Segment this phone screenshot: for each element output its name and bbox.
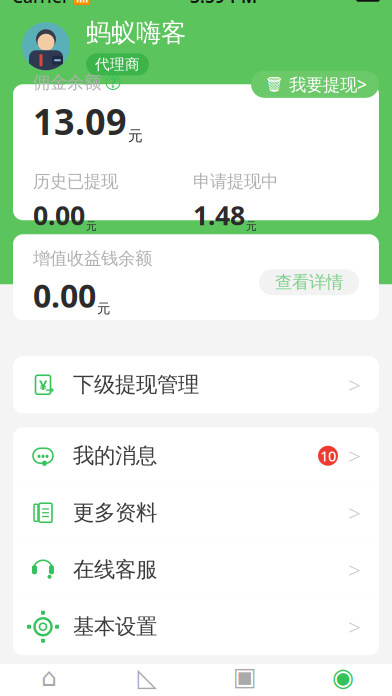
button[interactable]: 基本设置 bbox=[13, 598, 379, 655]
staticText: 下级提现管理 bbox=[73, 372, 199, 398]
staticText: ••• bbox=[37, 449, 49, 463]
staticText: 元 bbox=[246, 219, 257, 233]
staticText: 我要提现> bbox=[289, 73, 367, 96]
staticText: ? bbox=[110, 74, 116, 91]
button[interactable]: ▣ bbox=[196, 664, 294, 696]
staticText: > bbox=[348, 498, 361, 528]
staticText: → bbox=[45, 384, 54, 396]
staticText: ⌂ bbox=[41, 663, 57, 692]
staticText: 佣金余额 bbox=[33, 72, 101, 93]
button[interactable]: ◉ bbox=[294, 664, 392, 696]
staticText: 10 bbox=[320, 446, 336, 465]
staticText: 我的消息 bbox=[73, 443, 157, 469]
staticText: > bbox=[348, 555, 361, 585]
staticText: 申请提现中 bbox=[193, 171, 278, 192]
staticText: 元 bbox=[86, 219, 97, 233]
staticText: 更多资料 bbox=[73, 500, 157, 526]
button[interactable]: ⌂ bbox=[0, 664, 98, 696]
staticText: > bbox=[348, 612, 361, 642]
button[interactable]: 🗑 bbox=[251, 71, 379, 98]
staticText: 增值收益钱余额 bbox=[33, 248, 152, 269]
button[interactable]: 查看详情 bbox=[259, 269, 359, 295]
staticText: 0.00 bbox=[33, 197, 85, 233]
staticText: 元 bbox=[97, 300, 110, 317]
staticText: ▣ bbox=[233, 662, 257, 691]
staticText: 🗑 bbox=[265, 76, 284, 93]
staticText: 3:59 PM bbox=[190, 0, 257, 8]
button[interactable]: ••• bbox=[13, 427, 379, 484]
button[interactable]: 更多资料 bbox=[13, 484, 379, 541]
staticText: 查看详情 bbox=[275, 272, 343, 293]
staticText: 基本设置 bbox=[73, 614, 157, 640]
staticText: 元 bbox=[128, 127, 143, 145]
staticText: ◺ bbox=[137, 663, 156, 692]
staticText: 蚂蚁嗨客 bbox=[86, 17, 186, 48]
button[interactable]: ¥ bbox=[13, 356, 379, 413]
button[interactable]: ◺ bbox=[98, 664, 196, 696]
staticText: 📶 bbox=[69, 0, 91, 6]
staticText: > bbox=[348, 441, 361, 471]
staticText: 历史已提现 bbox=[33, 171, 118, 192]
staticText: Carrier bbox=[12, 0, 69, 8]
staticText: 代理商 bbox=[95, 55, 140, 73]
staticText: 在线客服 bbox=[73, 557, 157, 583]
staticText: > bbox=[348, 370, 361, 400]
staticText: 0.00 bbox=[33, 274, 96, 317]
staticText: ◉ bbox=[332, 663, 354, 692]
staticText: 1.48 bbox=[193, 197, 245, 233]
button[interactable]: 在线客服 bbox=[13, 541, 379, 598]
staticText: ¥ bbox=[39, 375, 47, 394]
staticText: 13.09 bbox=[33, 97, 127, 145]
